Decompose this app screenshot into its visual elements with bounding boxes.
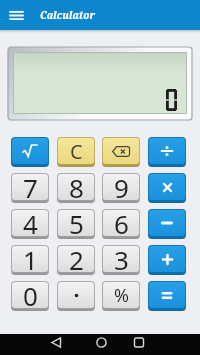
button[interactable]: 0 <box>11 281 49 311</box>
staticText: 9 <box>114 173 129 203</box>
button[interactable]: 9 <box>102 173 140 203</box>
button[interactable]: 4 <box>11 209 49 239</box>
button[interactable] <box>148 209 186 239</box>
button[interactable]: 2 <box>57 245 95 275</box>
staticText: 0 <box>23 281 38 311</box>
staticText: C <box>70 138 83 165</box>
staticText: 5 <box>69 209 84 239</box>
button[interactable] <box>11 137 49 167</box>
staticText: 2 <box>69 245 84 275</box>
button[interactable]: 5 <box>57 209 95 239</box>
button[interactable]: 6 <box>102 209 140 239</box>
button[interactable] <box>148 137 186 167</box>
staticText: 6 <box>114 209 129 239</box>
button[interactable] <box>148 245 186 275</box>
staticText: 8 <box>69 173 84 203</box>
staticText: 3 <box>114 245 129 275</box>
button[interactable]: % <box>102 281 140 311</box>
staticText: Calculator <box>40 8 95 22</box>
button[interactable] <box>5 3 28 27</box>
button[interactable]: 7 <box>11 173 49 203</box>
staticText: 7 <box>23 173 38 203</box>
staticText: 1 <box>23 245 38 275</box>
button[interactable]: 8 <box>57 173 95 203</box>
button[interactable] <box>57 281 95 311</box>
button[interactable] <box>148 173 186 203</box>
button[interactable]: 1 <box>11 245 49 275</box>
button[interactable] <box>102 137 140 167</box>
button[interactable]: C <box>57 137 95 167</box>
staticText: 4 <box>23 209 38 239</box>
button[interactable]: 3 <box>102 245 140 275</box>
staticText: % <box>114 283 129 308</box>
button[interactable] <box>0 334 200 355</box>
button[interactable] <box>148 281 186 311</box>
